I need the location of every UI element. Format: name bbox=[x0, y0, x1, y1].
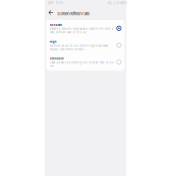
staticText: 4G .ıl ıll 86% bbox=[107, 1, 129, 5]
staticText: visuals. Uses more power. bbox=[50, 48, 85, 51]
staticText: Refresh at up to 120 Hz for highly anima… bbox=[50, 44, 109, 47]
staticText: Screen refresh rate bbox=[57, 11, 89, 16]
staticText: Balance smooth display and battery life … bbox=[50, 27, 113, 30]
staticText: Dynamic bbox=[50, 23, 63, 26]
staticText: Standard bbox=[50, 57, 64, 60]
staticText: High bbox=[50, 40, 57, 43]
staticText: Save power by limiting the refresh rate … bbox=[50, 61, 114, 64]
button[interactable]: Back bbox=[47, 8, 55, 16]
button[interactable]: Dynamic bbox=[46, 20, 125, 37]
staticText: SKT 11:24 bbox=[48, 1, 63, 5]
staticText: rate refresh rate of 120 Hz. bbox=[50, 31, 87, 34]
button[interactable]: High bbox=[46, 37, 125, 54]
button[interactable]: Standard bbox=[46, 54, 125, 70]
staticText: Hz. bbox=[50, 64, 54, 68]
